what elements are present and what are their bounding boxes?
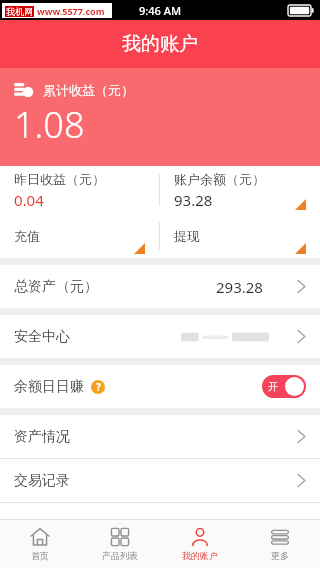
staticText: www.5577.com — [37, 5, 105, 17]
staticText: 0.04 — [14, 190, 44, 210]
button[interactable]: 交易记录 — [0, 459, 320, 502]
staticText: 昨日收益（元） — [14, 171, 105, 187]
staticText: 交易记录 — [14, 472, 70, 490]
staticText: 产品列表 — [102, 550, 138, 561]
button[interactable]: 帮助 — [91, 380, 105, 394]
staticText: 总资产（元） — [14, 278, 98, 296]
button[interactable]: 总资产（元） — [0, 265, 320, 308]
button[interactable]: 充值 — [0, 214, 159, 258]
button[interactable]: 资产情况 — [0, 415, 320, 458]
staticText: 93.28 — [174, 190, 213, 210]
button[interactable]: 产品列表 — [80, 520, 160, 568]
staticText: 账户余额（元） — [174, 171, 265, 187]
staticText: 提现 — [174, 228, 200, 244]
button[interactable]: 余额日日赚开关，已开启 — [262, 375, 306, 398]
staticText: 我机网 — [6, 6, 33, 17]
staticText: 9:46 AM — [139, 3, 182, 18]
button[interactable]: 首页 — [0, 520, 80, 568]
button[interactable]: 安全中心 — [0, 315, 320, 358]
staticText: 资产情况 — [14, 428, 70, 446]
button[interactable]: 更多 — [240, 520, 320, 568]
button[interactable]: 账户余额（元） — [160, 166, 320, 214]
staticText: 安全中心 — [14, 328, 70, 346]
staticText: 我的账户 — [182, 550, 218, 561]
button[interactable]: 提现 — [160, 214, 320, 258]
staticText: 首页 — [31, 550, 49, 561]
staticText: 充值 — [14, 228, 40, 244]
button[interactable]: 昨日收益（元） — [0, 166, 159, 214]
staticText: 余额日日赚 — [14, 378, 84, 396]
staticText: 293.28 — [216, 277, 263, 297]
staticText: ? — [96, 380, 101, 394]
staticText: 开 — [268, 380, 278, 393]
button[interactable]: 我的账户 — [160, 520, 240, 568]
staticText: 我的账户 — [122, 32, 198, 56]
staticText: 1.08 — [14, 100, 85, 149]
staticText: 累计收益（元） — [43, 82, 134, 98]
staticText: 更多 — [271, 550, 289, 561]
